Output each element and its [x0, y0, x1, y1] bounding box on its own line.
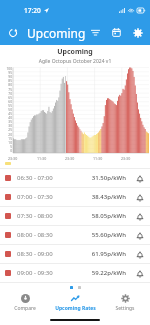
button[interactable]: Compare	[0, 291, 50, 315]
staticText: 10	[8, 141, 12, 145]
button[interactable]: 09:00 - 09:30	[0, 264, 150, 282]
staticText: Upcoming	[0, 47, 150, 57]
staticText: 5	[10, 145, 12, 149]
button[interactable]: 08:30 - 09:00	[0, 245, 150, 263]
button[interactable]: 07:00 - 07:30	[0, 188, 150, 206]
staticText: 70	[8, 92, 12, 96]
staticText: Compare	[14, 305, 36, 312]
staticText: 11:30	[93, 156, 103, 161]
staticText: 85	[8, 79, 12, 83]
staticText: 35	[8, 120, 12, 124]
staticText: 61.95p/kWh	[91, 250, 126, 258]
staticText: 59.22p/kWh	[91, 269, 126, 277]
button[interactable]: 08:00 - 08:30	[0, 226, 150, 244]
button[interactable]: Settings	[127, 22, 148, 43]
staticText: 38.43p/kWh	[91, 193, 126, 201]
staticText: 80	[8, 83, 12, 87]
staticText: 17:20	[24, 6, 41, 15]
button[interactable]: Set alert	[133, 248, 146, 261]
button[interactable]: Set alert	[133, 191, 146, 204]
staticText: 30	[8, 124, 12, 128]
button[interactable]: Settings	[100, 291, 150, 315]
button[interactable]: Calendar	[106, 22, 127, 43]
staticText: 40	[8, 116, 12, 120]
button[interactable]: 06:30 - 07:00	[0, 169, 150, 187]
staticText: 07:30 - 08:00	[17, 212, 91, 220]
staticText: 55	[8, 104, 12, 108]
button[interactable]: Upcoming Rates	[50, 291, 100, 315]
staticText: 100	[6, 67, 12, 71]
staticText: 23:30	[121, 156, 131, 161]
button[interactable]: Set alert	[133, 172, 146, 185]
staticText: 08:30 - 09:00	[17, 250, 91, 258]
staticText: 55.60p/kWh	[91, 231, 126, 239]
staticText: Agile Octopus October 2024 v1	[0, 58, 150, 65]
staticText: 95	[8, 71, 12, 75]
staticText: Upcoming Rates	[55, 305, 96, 312]
staticText: 06:30 - 07:00	[17, 174, 91, 182]
staticText: 60	[8, 100, 12, 104]
button[interactable]: Refresh	[3, 23, 23, 43]
staticText: 90	[8, 75, 12, 79]
staticText: 23:30	[65, 156, 75, 161]
button[interactable]: Filter	[85, 22, 106, 43]
staticText: 11:30	[37, 156, 47, 161]
staticText: 23:30	[8, 156, 18, 161]
button[interactable]: Set alert	[133, 229, 146, 242]
button[interactable]: Set alert	[133, 267, 146, 280]
button[interactable]: 07:30 - 08:00	[0, 207, 150, 225]
staticText: 58.05p/kWh	[91, 212, 126, 220]
staticText: Settings	[115, 305, 135, 312]
staticText: 65	[8, 96, 12, 100]
staticText: 20	[8, 133, 12, 137]
staticText: 07:00 - 07:30	[17, 193, 91, 201]
staticText: 25	[8, 128, 12, 132]
button[interactable]	[0, 161, 150, 168]
staticText: 31.50p/kWh	[91, 174, 126, 182]
staticText: 08:00 - 08:30	[17, 231, 91, 239]
button[interactable]: Set alert	[133, 210, 146, 223]
staticText: 50	[8, 108, 12, 112]
staticText: 0	[10, 149, 12, 153]
staticText: 15	[8, 137, 12, 141]
staticText: 45	[8, 112, 12, 116]
staticText: 09:00 - 09:30	[17, 269, 91, 277]
staticText: 75	[8, 88, 12, 92]
staticText: Upcoming	[27, 25, 86, 41]
